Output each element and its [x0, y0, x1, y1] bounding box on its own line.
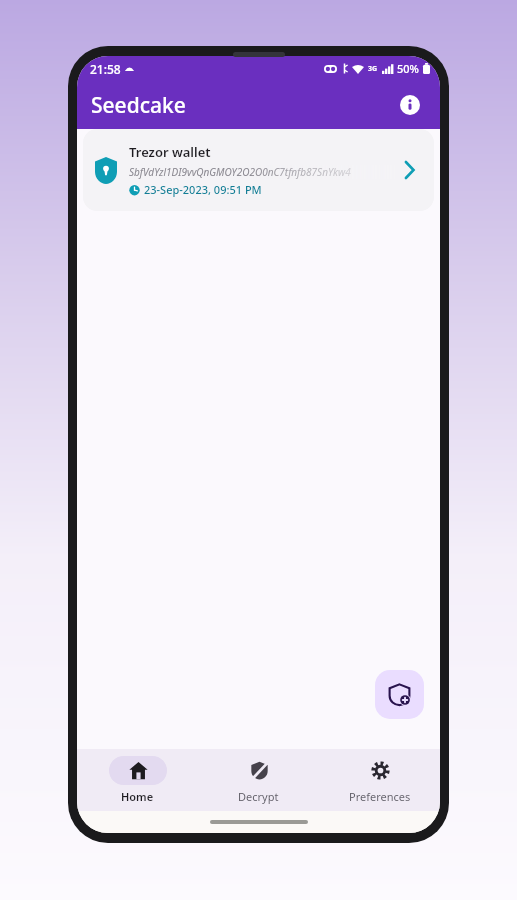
staticText: 3G: [368, 64, 378, 74]
button[interactable]: Add wallet: [375, 670, 424, 719]
staticText: SbfVdYzl1DI9vvQnGMOY2O2O0nC7tfnfb87SnYkw…: [129, 165, 351, 179]
button[interactable]: Trezor wallet: [83, 129, 434, 211]
staticText: 23-Sep-2023, 09:51 PM: [144, 182, 262, 197]
staticText: Seedcake: [91, 91, 186, 120]
staticText: Preferences: [349, 789, 411, 804]
button[interactable]: Preferences: [319, 749, 440, 811]
staticText: Trezor wallet: [129, 143, 211, 161]
button[interactable]: Info: [390, 85, 430, 125]
button[interactable]: Decrypt: [198, 749, 319, 811]
staticText: 50%: [397, 61, 419, 76]
staticText: Decrypt: [238, 789, 279, 804]
button[interactable]: Home: [77, 749, 198, 811]
staticText: Home: [121, 789, 154, 804]
staticText: 21:58: [90, 61, 121, 77]
